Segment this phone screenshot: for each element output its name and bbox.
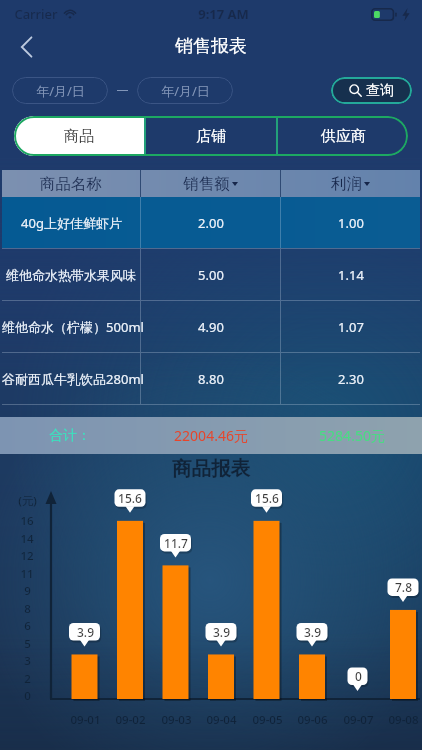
staticText: 供应商 — [321, 127, 366, 146]
staticText: 4.90 — [198, 318, 224, 336]
staticText: 09-05 — [252, 712, 283, 728]
staticText: 11.7 — [164, 535, 188, 551]
staticText: 16 — [20, 513, 34, 529]
staticText: 2.00 — [198, 214, 224, 232]
staticText: 维他命水热带水果风味 — [6, 267, 136, 283]
button[interactable]: 销售额 — [141, 170, 280, 197]
staticText: Carrier — [14, 5, 58, 23]
staticText: 09-01 — [70, 712, 101, 728]
staticText: (元) — [18, 493, 37, 509]
staticText: 40g上好佳鲜虾片 — [21, 214, 122, 232]
button[interactable]: 店铺 — [146, 116, 276, 156]
button[interactable]: 利润 — [281, 170, 420, 197]
button[interactable]: 商品名称 — [2, 170, 140, 197]
staticText: 利润 — [331, 174, 362, 194]
staticText: 09-07 — [343, 712, 374, 728]
staticText: 09-08 — [388, 712, 419, 728]
staticText: 22004.46元 — [174, 426, 248, 445]
staticText: 年/月/日 — [161, 82, 210, 100]
staticText: 1.14 — [338, 266, 364, 284]
staticText: 5.00 — [198, 266, 224, 284]
staticText: 9:17 AM — [198, 5, 249, 23]
staticText: 5284.50元 — [319, 426, 385, 445]
staticText: 商品报表 — [172, 456, 250, 481]
button[interactable]: 谷耐西瓜牛乳饮品280ml — [2, 353, 420, 404]
staticText: 8.80 — [198, 370, 224, 388]
staticText: 12 — [20, 548, 34, 564]
staticText: 1.07 — [338, 318, 364, 336]
button[interactable]: 年/月/日 — [137, 77, 233, 104]
button[interactable]: 维他命水（柠檬）500ml — [2, 301, 420, 352]
staticText: 15.6 — [255, 490, 279, 506]
staticText: 谷耐西瓜牛乳饮品280ml — [2, 370, 140, 388]
staticText: 09-04 — [206, 712, 237, 728]
staticText: 6 — [24, 618, 31, 634]
staticText: 3 — [24, 653, 31, 669]
staticText: 09-03 — [161, 712, 192, 728]
staticText: 商品 — [64, 127, 94, 146]
staticText: 3.9 — [213, 624, 230, 640]
staticText: 年/月/日 — [36, 82, 85, 100]
staticText: 商品名称 — [40, 174, 102, 194]
staticText: 2 — [24, 671, 31, 687]
button[interactable]: 年/月/日 — [12, 77, 108, 104]
staticText: 0 — [355, 668, 362, 684]
staticText: 1.00 — [338, 214, 364, 232]
staticText: 7.8 — [395, 579, 412, 595]
button[interactable]: 供应商 — [278, 116, 408, 156]
staticText: 查询 — [366, 82, 394, 100]
staticText: 11 — [20, 566, 34, 582]
staticText: 销售额 — [183, 174, 230, 194]
button[interactable]: 商品 — [14, 116, 144, 156]
staticText: 3.9 — [77, 624, 94, 640]
staticText: 合计： — [49, 427, 91, 445]
staticText: 店铺 — [196, 127, 226, 146]
button[interactable]: 维他命水热带水果风味 — [2, 249, 420, 300]
staticText: 2.30 — [338, 370, 364, 388]
staticText: 维他命水（柠檬）500ml — [2, 318, 140, 336]
staticText: 15.6 — [118, 490, 142, 506]
button[interactable]: Back — [0, 28, 52, 65]
staticText: 09-02 — [115, 712, 146, 728]
staticText: 0 — [24, 688, 31, 704]
button[interactable]: 40g上好佳鲜虾片 — [2, 197, 420, 248]
staticText: 5 — [24, 636, 31, 652]
staticText: 9 — [24, 583, 31, 599]
button[interactable]: 查询 — [331, 77, 412, 104]
staticText: 09-06 — [297, 712, 328, 728]
staticText: 3.9 — [304, 624, 321, 640]
staticText: 14 — [20, 531, 34, 547]
staticText: 销售报表 — [175, 35, 247, 58]
staticText: 8 — [24, 601, 31, 617]
